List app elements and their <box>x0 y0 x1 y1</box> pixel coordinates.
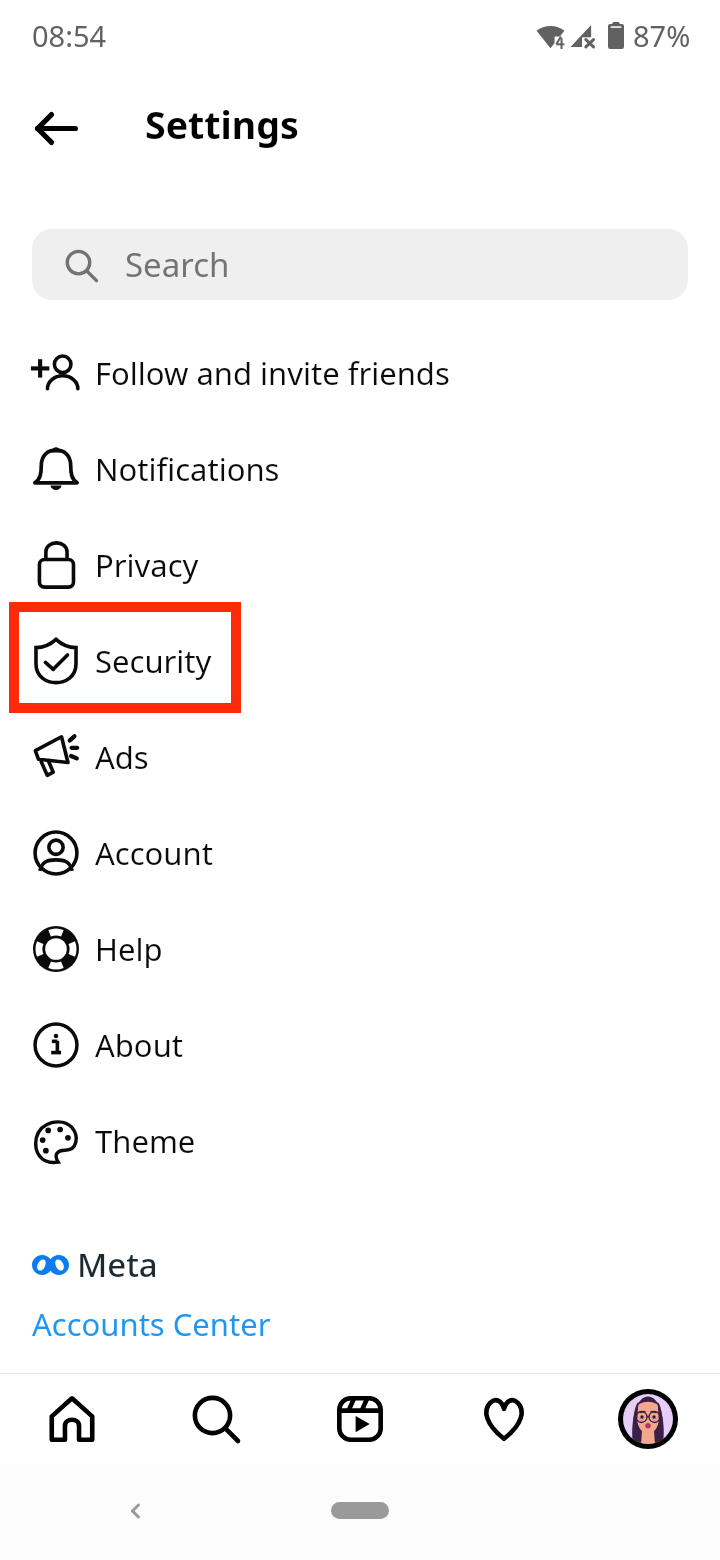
staticText: Notifications <box>95 448 280 490</box>
button[interactable]: Search <box>144 1374 288 1464</box>
button[interactable]: Theme <box>0 1093 720 1189</box>
button[interactable]: Search <box>32 229 688 300</box>
staticText: Search <box>125 242 230 287</box>
staticText: Accounts Center <box>32 1303 271 1345</box>
staticText: Follow and invite friends <box>95 352 450 394</box>
staticText: About <box>95 1024 183 1066</box>
button[interactable]: Accounts Center <box>32 1303 271 1345</box>
button[interactable]: Account <box>0 805 720 901</box>
button[interactable]: Help <box>0 901 720 997</box>
staticText: Ads <box>95 736 149 778</box>
staticText: Theme <box>95 1120 196 1162</box>
staticText: 08:54 <box>32 16 107 55</box>
staticText: Meta <box>77 1242 158 1287</box>
button[interactable]: Follow and invite friends <box>0 325 720 421</box>
staticText: Privacy <box>95 544 199 586</box>
button[interactable]: Privacy <box>0 517 720 613</box>
button[interactable]: Security <box>0 613 720 709</box>
button[interactable]: About <box>0 997 720 1093</box>
button[interactable]: Reels <box>288 1374 432 1464</box>
staticText: Security <box>95 640 212 682</box>
button[interactable]: Notifications <box>0 421 720 517</box>
staticText: Account <box>95 832 213 874</box>
button[interactable]: Back <box>16 88 96 168</box>
button[interactable]: Ads <box>0 709 720 805</box>
staticText: 87% <box>633 16 691 55</box>
staticText: Help <box>95 928 163 970</box>
button[interactable]: Activity <box>432 1374 576 1464</box>
staticText: Settings <box>145 99 299 150</box>
button[interactable]: Profile <box>576 1374 720 1464</box>
button[interactable]: Home <box>0 1374 144 1464</box>
